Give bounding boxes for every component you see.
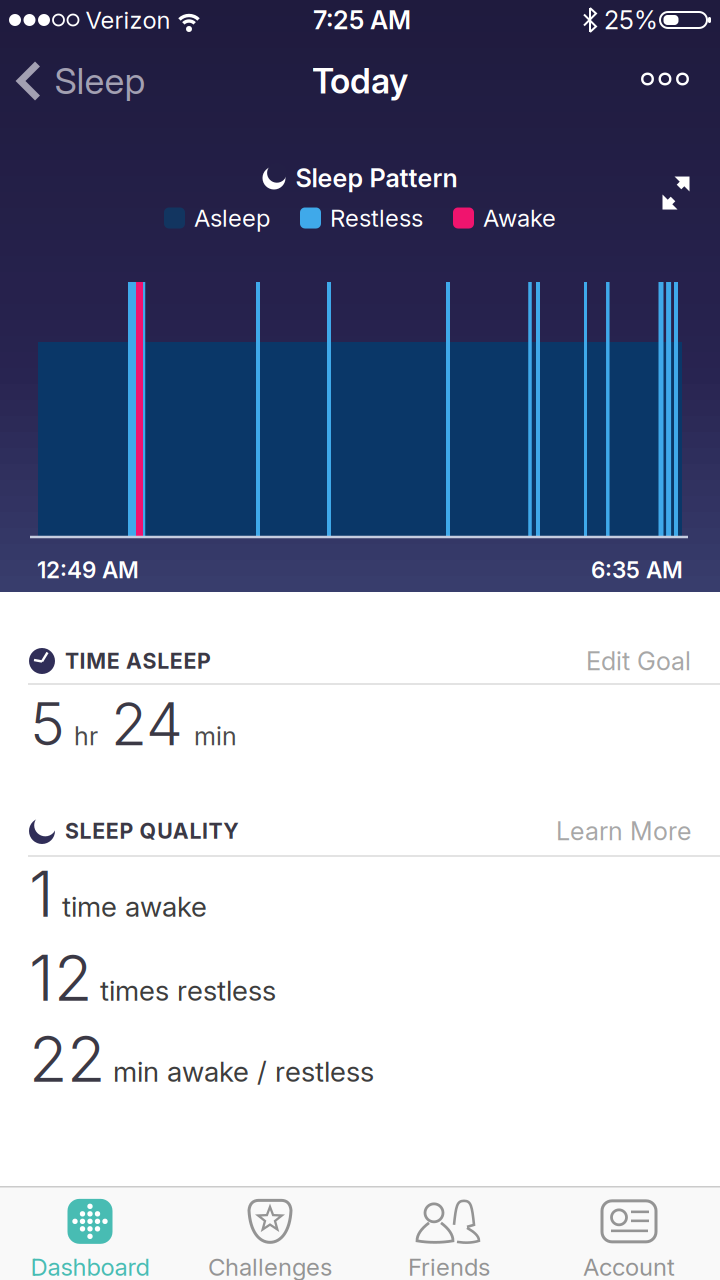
- button[interactable]: Learn More: [556, 816, 691, 846]
- staticText: Account: [583, 1253, 675, 1280]
- staticText: 5: [30, 689, 65, 759]
- staticText: Verizon: [85, 6, 170, 34]
- staticText: min: [194, 721, 237, 751]
- button[interactable]: Account: [539, 1195, 719, 1280]
- staticText: Restless: [330, 204, 423, 232]
- staticText: TIME ASLEEP: [65, 648, 211, 674]
- staticText: 24: [111, 689, 183, 759]
- staticText: 1: [29, 857, 54, 931]
- staticText: times restless: [100, 974, 276, 1007]
- staticText: SLEEP QUALITY: [65, 818, 239, 844]
- staticText: Asleep: [194, 204, 270, 232]
- staticText: hr: [74, 721, 98, 751]
- staticText: Friends: [408, 1253, 490, 1280]
- staticText: Awake: [483, 204, 556, 232]
- staticText: Today: [312, 61, 408, 101]
- staticText: 6:35 AM: [591, 557, 683, 583]
- staticText: Learn More: [556, 816, 691, 846]
- staticText: Challenges: [208, 1253, 332, 1280]
- staticText: Sleep Pattern: [295, 163, 457, 193]
- button[interactable]: Friends: [359, 1195, 539, 1280]
- staticText: 7:25 AM: [313, 5, 411, 35]
- staticText: 25%: [604, 5, 658, 35]
- button[interactable]: Sleep: [16, 60, 145, 102]
- staticText: Dashboard: [30, 1253, 149, 1280]
- staticText: 22: [29, 1022, 105, 1096]
- staticText: Edit Goal: [586, 646, 691, 676]
- staticText: min awake / restless: [113, 1055, 374, 1088]
- button[interactable]: [642, 74, 688, 84]
- staticText: time awake: [62, 890, 207, 923]
- staticText: 12:49 AM: [37, 557, 139, 583]
- staticText: Sleep: [54, 60, 145, 102]
- staticText: 12: [29, 941, 92, 1015]
- button[interactable]: Edit Goal: [586, 646, 691, 676]
- button[interactable]: [662, 176, 690, 209]
- button[interactable]: Dashboard: [5, 1195, 175, 1280]
- button[interactable]: Challenges: [180, 1195, 360, 1280]
